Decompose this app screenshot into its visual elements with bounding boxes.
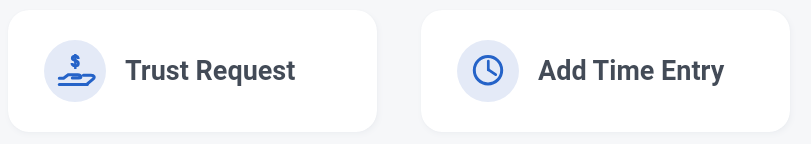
button[interactable]: Trust Request xyxy=(8,10,377,132)
staticText: Trust Request xyxy=(125,55,296,87)
staticText: Add Time Entry xyxy=(538,55,725,87)
button[interactable]: Add Time Entry xyxy=(421,10,790,132)
